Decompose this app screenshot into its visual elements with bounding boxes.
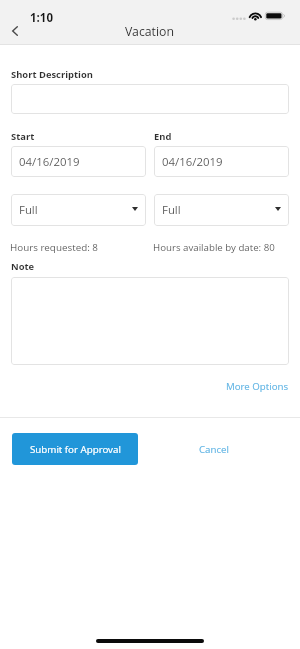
- staticText: Full: [162, 202, 181, 218]
- staticText: Note: [11, 260, 35, 273]
- button[interactable]: Back: [5, 21, 24, 40]
- staticText: 04/16/2019: [162, 154, 223, 170]
- staticText: Full: [19, 202, 38, 218]
- staticText: More Options: [226, 380, 289, 393]
- button[interactable]: Cancel: [151, 433, 277, 465]
- button[interactable]: [11, 277, 289, 365]
- staticText: Hours requested: 8: [10, 240, 98, 253]
- button[interactable]: Full: [154, 194, 289, 226]
- staticText: Short Description: [11, 68, 93, 81]
- button[interactable]: 04/16/2019: [11, 146, 146, 177]
- button[interactable]: [11, 84, 289, 114]
- button[interactable]: Submit for Approval: [12, 433, 138, 465]
- staticText: 04/16/2019: [19, 154, 80, 170]
- button[interactable]: Full: [11, 194, 146, 226]
- staticText: 1:10: [30, 10, 53, 26]
- staticText: Submit for Approval: [30, 443, 121, 456]
- staticText: Hours available by date: 80: [153, 241, 275, 254]
- staticText: Start: [11, 130, 35, 143]
- staticText: Cancel: [199, 443, 229, 456]
- button[interactable]: More Options: [218, 378, 289, 394]
- button[interactable]: 04/16/2019: [154, 146, 289, 177]
- staticText: Vacation: [125, 23, 175, 40]
- staticText: End: [154, 130, 172, 143]
